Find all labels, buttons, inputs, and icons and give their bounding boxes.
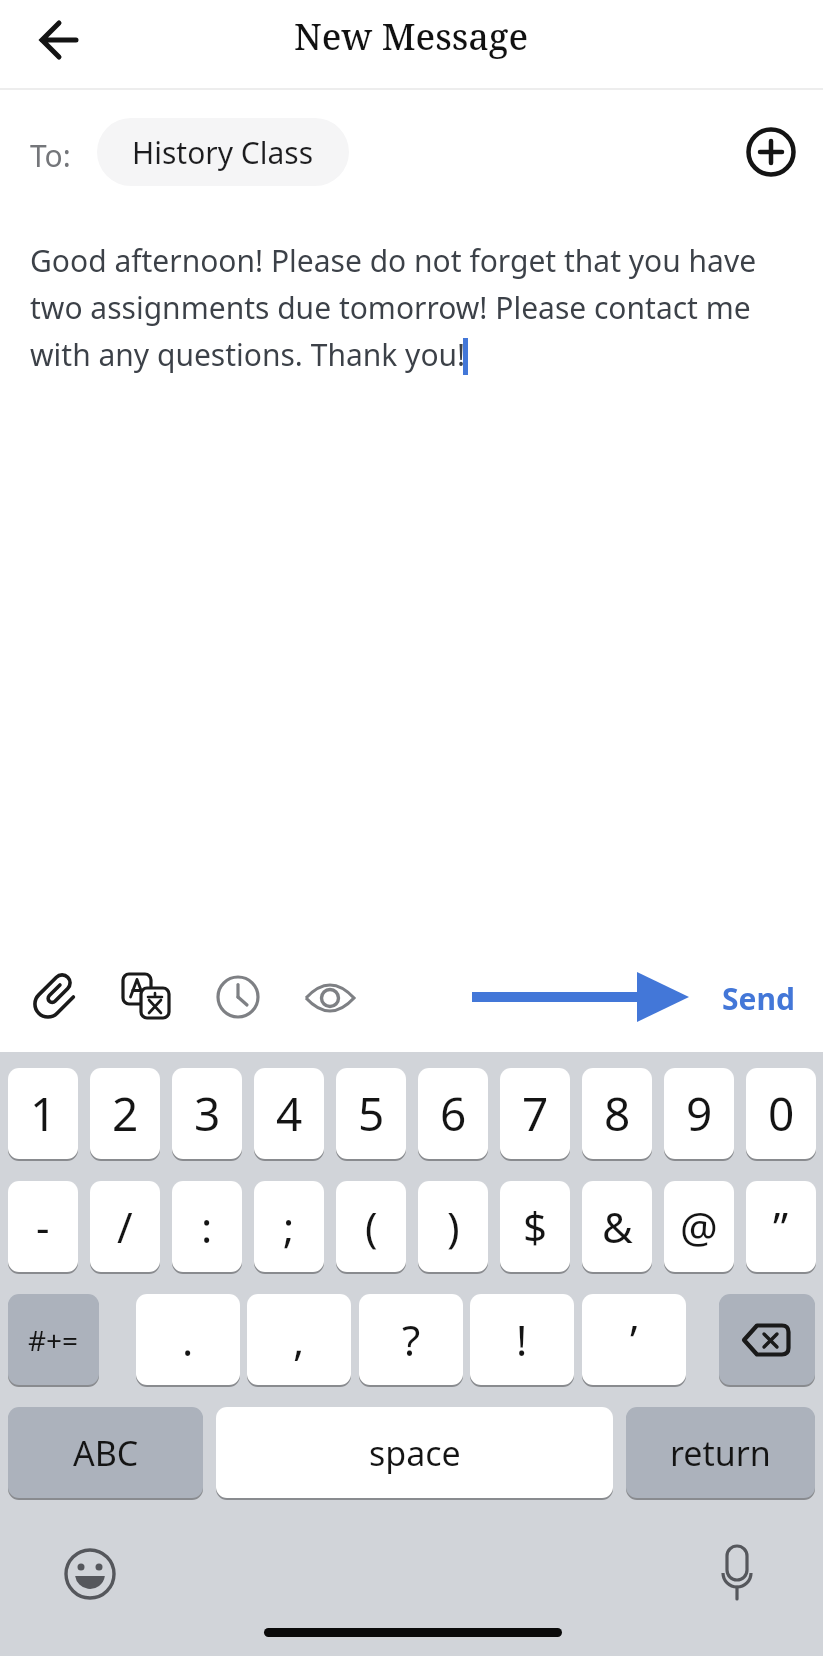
staticText: ( [365,1198,378,1255]
staticText: Send [722,978,795,1019]
button[interactable]: , [247,1294,351,1385]
staticText: 8 [604,1082,631,1145]
button[interactable]: return [626,1407,815,1498]
button[interactable]: 4 [254,1068,324,1159]
staticText: ; [283,1198,295,1255]
staticText: / [117,1198,133,1255]
staticText: ? [402,1311,421,1368]
staticText: 2 [112,1082,139,1145]
staticText: ) [447,1198,460,1255]
button[interactable] [216,975,260,1019]
staticText: & [602,1198,633,1255]
button[interactable] [746,127,796,177]
button[interactable] [27,969,83,1025]
button[interactable] [120,970,172,1022]
staticText: space [369,1430,461,1476]
button[interactable]: 7 [500,1068,570,1159]
button[interactable]: ABC [8,1407,203,1498]
staticText: @ [680,1198,718,1255]
staticText: $ [523,1198,548,1255]
button[interactable]: @ [664,1181,734,1272]
button[interactable] [712,1542,762,1604]
staticText: : [201,1198,213,1255]
button[interactable]: space [216,1407,613,1498]
staticText: #+= [28,1321,79,1359]
staticText: ” [773,1198,789,1255]
staticText: 7 [522,1082,549,1145]
staticText: return [670,1430,771,1476]
button[interactable]: 0 [746,1068,816,1159]
staticText: To: [30,135,71,176]
button[interactable]: 1 [8,1068,78,1159]
button[interactable]: ? [359,1294,463,1385]
button[interactable]: : [172,1181,242,1272]
button[interactable]: 3 [172,1068,242,1159]
staticText: - [36,1198,50,1255]
staticText: 4 [276,1082,303,1145]
button[interactable]: #+= [8,1294,99,1385]
staticText: ! [516,1311,528,1368]
staticText: 0 [768,1082,795,1145]
button[interactable]: 5 [336,1068,406,1159]
button[interactable] [304,974,356,1022]
staticText: 9 [686,1082,713,1145]
button[interactable]: . [136,1294,240,1385]
staticText: Good afternoon! Please do not forget tha… [30,240,757,375]
button[interactable]: History Class [97,118,349,186]
staticText: ’ [630,1311,638,1368]
staticText: 6 [440,1082,467,1145]
button[interactable]: ) [418,1181,488,1272]
button[interactable]: $ [500,1181,570,1272]
staticText: New Message [294,12,529,61]
staticText: 5 [358,1082,385,1145]
button[interactable]: 8 [582,1068,652,1159]
staticText: History Class [132,132,314,173]
button[interactable]: / [90,1181,160,1272]
button[interactable] [63,1547,117,1601]
button[interactable] [30,16,82,64]
button[interactable]: & [582,1181,652,1272]
button[interactable]: 6 [418,1068,488,1159]
button[interactable]: ” [746,1181,816,1272]
staticText: . [182,1311,194,1368]
button[interactable]: 9 [664,1068,734,1159]
staticText: 1 [30,1082,57,1145]
staticText: ABC [73,1430,139,1476]
staticText: 3 [194,1082,221,1145]
button[interactable]: 2 [90,1068,160,1159]
staticText: , [293,1311,305,1368]
button[interactable]: ; [254,1181,324,1272]
button[interactable]: ( [336,1181,406,1272]
button[interactable] [719,1294,815,1385]
button[interactable]: Send [460,965,810,1029]
button[interactable]: ’ [582,1294,686,1385]
button[interactable]: - [8,1181,78,1272]
button[interactable]: ! [470,1294,574,1385]
